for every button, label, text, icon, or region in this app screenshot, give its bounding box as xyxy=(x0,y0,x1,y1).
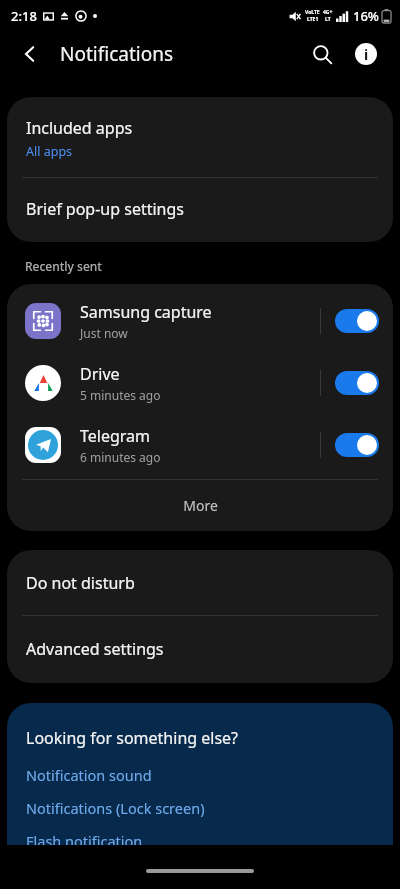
button[interactable]: Telegram xyxy=(7,414,393,476)
staticText: Samsung capture xyxy=(80,301,212,323)
staticText: Telegram xyxy=(80,425,151,447)
button[interactable]: Toggle xyxy=(335,433,379,457)
button[interactable]: Toggle xyxy=(335,309,379,333)
button[interactable]: Search xyxy=(300,32,344,76)
button[interactable]: Notifications (Lock screen) xyxy=(26,798,374,818)
staticText: 6 minutes ago xyxy=(80,449,161,465)
staticText: 16% xyxy=(353,7,379,25)
button[interactable]: Included apps xyxy=(7,97,393,177)
staticText: i xyxy=(364,45,369,64)
button[interactable]: Information xyxy=(344,32,388,76)
staticText: 5 minutes ago xyxy=(80,387,161,403)
staticText: Notifications (Lock screen) xyxy=(26,798,205,818)
button[interactable]: Do not disturb xyxy=(7,550,393,615)
staticText: Notification sound xyxy=(26,765,152,785)
staticText: 4G+ xyxy=(323,9,333,16)
button[interactable]: Toggle xyxy=(335,371,379,395)
button[interactable]: More xyxy=(7,480,393,531)
button[interactable]: Flash notification xyxy=(26,831,374,851)
staticText: LT xyxy=(325,16,331,23)
staticText: Brief pop-up settings xyxy=(26,198,184,220)
staticText: VoLTE xyxy=(305,9,320,16)
button[interactable]: Samsung capture xyxy=(7,290,393,352)
staticText: Recently sent xyxy=(25,258,102,274)
staticText: Do not disturb xyxy=(26,572,135,594)
staticText: Notifications xyxy=(60,41,174,67)
staticText: LTE1 xyxy=(307,16,319,23)
staticText: Drive xyxy=(80,363,120,385)
staticText: 2:18 xyxy=(11,7,37,25)
staticText: All apps xyxy=(26,143,73,160)
staticText: Looking for something else? xyxy=(26,727,239,749)
staticText: Advanced settings xyxy=(26,638,164,660)
button[interactable]: Advanced settings xyxy=(7,616,393,683)
staticText: Flash notification xyxy=(26,831,143,851)
button[interactable]: Notification sound xyxy=(26,765,374,785)
staticText: Included apps xyxy=(26,117,133,139)
staticText: More xyxy=(183,496,218,515)
staticText: Just now xyxy=(80,325,128,341)
button[interactable]: Back xyxy=(8,32,52,76)
button[interactable]: Brief pop-up settings xyxy=(7,178,393,242)
button[interactable]: Drive xyxy=(7,352,393,414)
